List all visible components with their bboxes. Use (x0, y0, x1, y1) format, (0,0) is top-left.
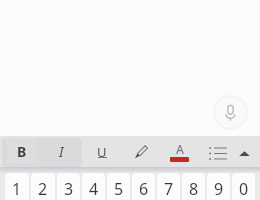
staticText: 3 (64, 178, 74, 200)
staticText: 2 (38, 178, 48, 200)
button[interactable]: Underline (86, 138, 117, 164)
staticText: I (59, 142, 64, 161)
staticText: 6 (139, 178, 149, 200)
button[interactable]: 2 (31, 173, 55, 200)
button[interactable]: 9 (207, 173, 230, 200)
staticText: 0 (239, 178, 249, 200)
button[interactable]: Voice input (215, 97, 246, 128)
button[interactable]: More formatting options (233, 138, 255, 164)
button[interactable]: B (6, 138, 37, 164)
staticText: 1 (12, 178, 22, 200)
staticText: B (17, 142, 27, 161)
button[interactable]: 0 (232, 173, 255, 200)
button[interactable]: 6 (132, 173, 155, 200)
staticText: A (176, 141, 184, 157)
staticText: 9 (214, 178, 224, 200)
button[interactable]: Highlight (126, 138, 156, 164)
button[interactable]: Text colour (164, 138, 194, 164)
staticText: U (97, 143, 107, 158)
button[interactable]: 3 (57, 173, 80, 200)
button[interactable]: 8 (182, 173, 205, 200)
button[interactable]: 4 (82, 173, 105, 200)
staticText: 4 (89, 178, 99, 200)
button[interactable]: 5 (107, 173, 130, 200)
staticText: 7 (164, 178, 174, 200)
button[interactable]: 7 (157, 173, 180, 200)
button[interactable]: I (46, 138, 77, 164)
button[interactable]: 1 (5, 173, 29, 200)
staticText: 5 (114, 178, 124, 200)
button[interactable]: Bulleted list (202, 138, 233, 164)
staticText: 8 (189, 178, 199, 200)
